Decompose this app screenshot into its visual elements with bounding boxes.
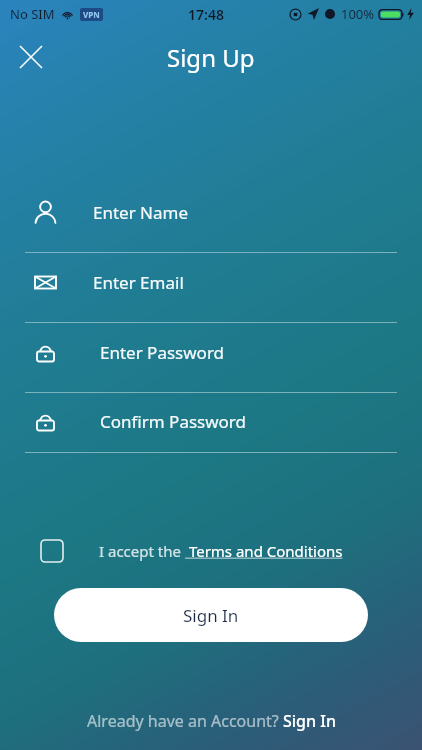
staticText: Sign Up	[167, 41, 255, 74]
staticText: Enter Name	[93, 201, 189, 224]
button[interactable]: Close	[12, 38, 50, 76]
staticText: Already have an Account?	[87, 710, 283, 732]
button[interactable]: Enter Email	[0, 253, 422, 323]
staticText: Terms and Conditions	[185, 541, 347, 561]
staticText: Sign In	[183, 604, 239, 627]
staticText: 17:48	[188, 5, 224, 24]
staticText: Confirm Password	[100, 410, 246, 433]
button[interactable]: Confirm Password	[0, 393, 422, 453]
staticText: Sign In	[283, 710, 336, 732]
staticText: VPN	[83, 9, 100, 20]
button[interactable]: Sign In	[54, 588, 368, 642]
staticText: No SIM	[10, 5, 55, 23]
button[interactable]: Enter Password	[0, 323, 422, 393]
button[interactable]: Enter Name	[0, 183, 422, 253]
button[interactable]: Already have an Account?	[87, 710, 336, 732]
button[interactable]: Accept terms checkbox	[36, 535, 68, 567]
staticText: Enter Password	[100, 341, 225, 364]
staticText: Enter Email	[93, 271, 184, 294]
staticText: 100%	[341, 5, 375, 23]
button[interactable]: Terms and Conditions	[185, 541, 347, 561]
staticText: I accept the	[99, 541, 185, 561]
